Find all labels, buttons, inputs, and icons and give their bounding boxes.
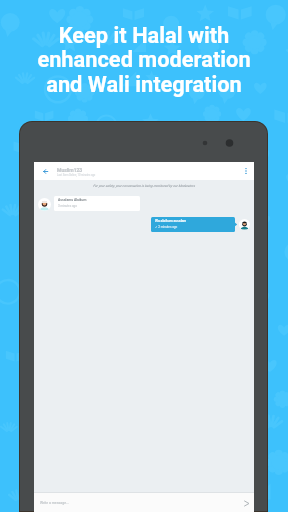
button[interactable]: Wa alaikum assalam [151, 217, 235, 232]
staticText: Last Seen Online, 10 minutes ago [57, 174, 96, 177]
button[interactable]: Send [238, 495, 254, 511]
staticText: For your safety, your conversation is be… [93, 184, 195, 188]
button[interactable]: Back [36, 162, 54, 180]
staticText: Keep it Halal with enhanced moderation a… [0, 23, 288, 98]
staticText: Wa alaikum assalam [155, 219, 187, 223]
staticText: Muslim123 [57, 167, 83, 173]
staticText: Write a message... [40, 501, 238, 505]
staticText: Assalamu Alaikum [58, 198, 87, 202]
staticText: 3 minutes ago [58, 204, 77, 208]
button[interactable]: Write a message... [34, 493, 254, 512]
button[interactable]: Assalamu Alaikum [54, 196, 140, 211]
button[interactable]: More options [237, 162, 255, 180]
staticText: ✓ 2 minutes ago [155, 225, 178, 229]
